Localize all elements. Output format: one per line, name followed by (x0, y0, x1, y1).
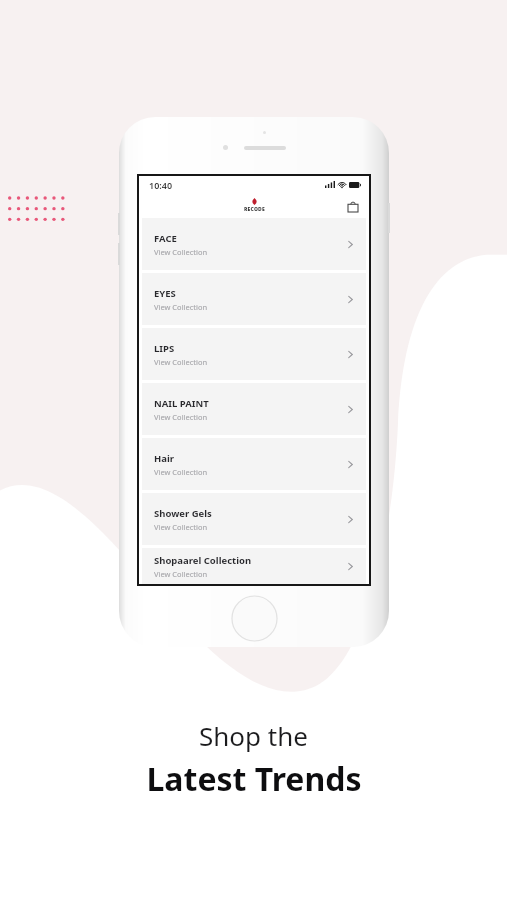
staticText: View Collection (154, 569, 208, 579)
button[interactable]: Shower Gels (142, 493, 366, 545)
button[interactable]: NAIL PAINT (142, 383, 366, 435)
button[interactable]: FACE (142, 218, 366, 270)
staticText: RECODE (244, 206, 265, 213)
staticText: View Collection (154, 467, 208, 477)
staticText: View Collection (154, 357, 208, 367)
button[interactable]: Shopping bag (345, 198, 361, 214)
staticText: FACE (154, 232, 177, 245)
staticText: View Collection (154, 247, 208, 257)
staticText: View Collection (154, 302, 208, 312)
button[interactable]: Shopaarel Collection (142, 548, 366, 584)
button[interactable]: LIPS (142, 328, 366, 380)
staticText: 10:40 (149, 179, 173, 191)
button[interactable]: Hair (142, 438, 366, 490)
staticText: Hair (154, 452, 175, 465)
staticText: View Collection (154, 412, 208, 422)
staticText: View Collection (154, 522, 208, 532)
staticText: EYES (154, 287, 176, 300)
staticText: LIPS (154, 342, 175, 355)
staticText: Shop the (199, 718, 308, 753)
staticText: Shopaarel Collection (154, 554, 252, 567)
staticText: Latest Trends (146, 757, 362, 801)
staticText: NAIL PAINT (154, 397, 209, 410)
button[interactable]: EYES (142, 273, 366, 325)
staticText: Shower Gels (154, 507, 212, 520)
